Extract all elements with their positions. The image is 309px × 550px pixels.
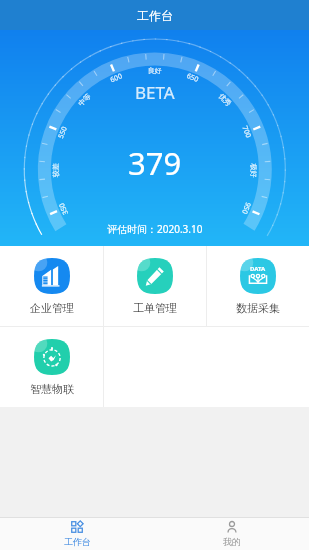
staticText: 工单管理 (133, 301, 177, 315)
staticText: 工作台 (137, 8, 173, 23)
button[interactable]: 数据采集 (207, 246, 309, 326)
staticText: 379 (128, 142, 182, 184)
staticText: 数据采集 (236, 301, 280, 315)
button[interactable]: 企业管理 (0, 246, 103, 326)
staticText: BETA (135, 81, 175, 104)
button[interactable]: 智慧物联 (0, 327, 103, 407)
staticText: 我的 (223, 536, 241, 547)
button[interactable]: 工作台 (0, 518, 154, 550)
button[interactable]: 我的 (154, 518, 309, 550)
staticText: 工作台 (64, 536, 91, 547)
staticText: 评估时间：2020.3.10 (107, 222, 203, 236)
button[interactable]: 工单管理 (104, 246, 206, 326)
staticText: 企业管理 (30, 301, 74, 315)
staticText: 智慧物联 (30, 382, 74, 396)
